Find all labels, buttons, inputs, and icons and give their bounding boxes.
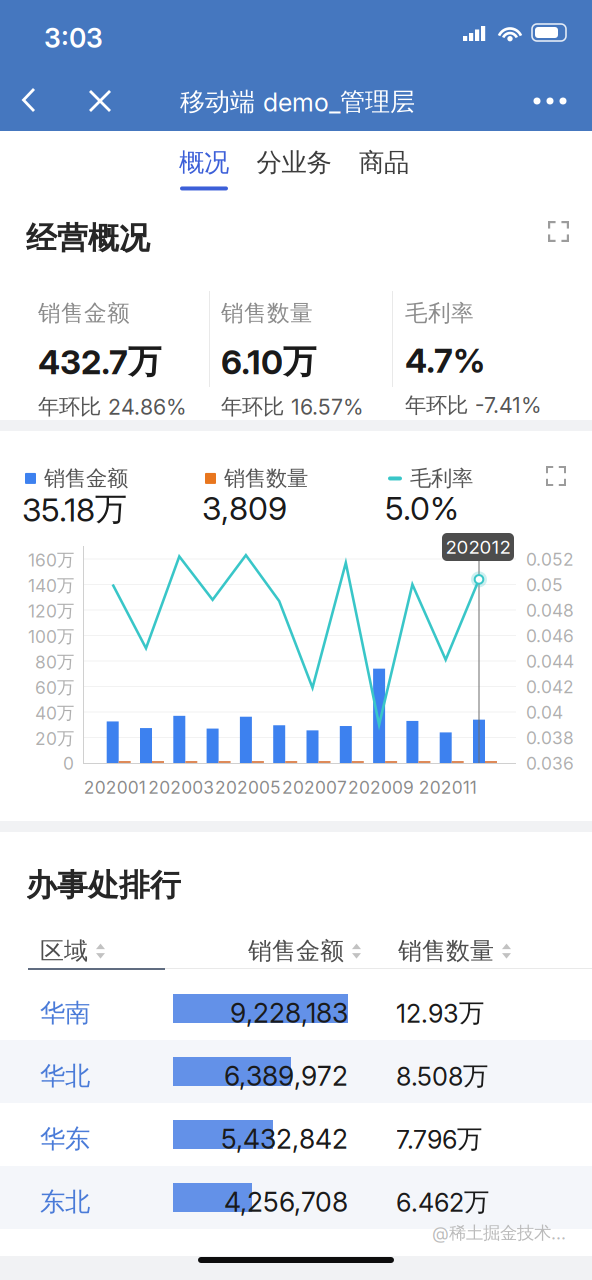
staticText: 12.93万: [396, 997, 484, 1029]
staticText: 9,228,183: [230, 997, 348, 1029]
staticText: 202009: [348, 777, 414, 798]
staticText: 5.0%: [385, 489, 459, 528]
staticText: 202012: [445, 536, 510, 558]
staticText: 80万: [35, 651, 74, 673]
button[interactable]: 分业务: [248, 131, 340, 191]
button[interactable]: 东北: [0, 1166, 592, 1229]
staticText: 8.508万: [396, 1060, 488, 1092]
button[interactable]: Expand overview: [548, 221, 569, 242]
staticText: 0.046: [526, 625, 574, 646]
button[interactable]: Close: [85, 86, 115, 116]
staticText: 0.052: [526, 549, 574, 570]
staticText: 毛利率: [410, 465, 473, 492]
staticText: 0.05: [526, 574, 563, 595]
staticText: 6,389,972: [224, 1060, 348, 1092]
staticText: 东北: [40, 1186, 90, 1218]
staticText: 4.7%: [405, 341, 485, 381]
staticText: 年环比: [221, 393, 284, 420]
staticText: 经营概况: [26, 219, 150, 258]
button[interactable]: Expand chart: [546, 466, 566, 486]
staticText: 0.042: [526, 676, 574, 697]
staticText: 销售金额: [44, 465, 128, 492]
staticText: 3:03: [44, 22, 103, 54]
staticText: 0.038: [526, 727, 574, 748]
staticText: 3,809: [202, 489, 287, 528]
staticText: 概况: [179, 146, 229, 178]
staticText: 销售数量: [224, 465, 308, 492]
staticText: 432.7万: [38, 341, 161, 383]
staticText: 销售数量: [221, 299, 313, 328]
staticText: 20万: [35, 727, 74, 749]
staticText: 移动端 demo_管理层: [180, 86, 415, 118]
staticText: 销售金额: [38, 299, 130, 328]
staticText: 华东: [40, 1123, 90, 1155]
button[interactable]: 华北: [0, 1040, 592, 1103]
staticText: 140万: [28, 574, 74, 596]
staticText: 4,256,708: [224, 1186, 348, 1218]
staticText: 202005: [215, 777, 281, 798]
staticText: 分业务: [256, 146, 331, 178]
button[interactable]: Back: [12, 83, 46, 117]
staticText: 华北: [40, 1060, 90, 1092]
staticText: 16.57%: [291, 394, 364, 420]
staticText: 24.86%: [108, 394, 187, 420]
staticText: 6.10万: [221, 341, 316, 383]
staticText: 销售数量: [398, 936, 494, 966]
staticText: 0.048: [526, 600, 574, 621]
staticText: 7.796万: [396, 1123, 482, 1155]
staticText: @稀土掘金技术社区: [432, 1222, 582, 1244]
button[interactable]: More options: [527, 88, 573, 114]
staticText: 35.18万: [22, 489, 127, 529]
staticText: 0.04: [526, 702, 563, 723]
staticText: 办事处排行: [26, 866, 181, 905]
staticText: 0: [63, 753, 74, 774]
staticText: 202007: [282, 777, 347, 798]
staticText: -7.41%: [475, 392, 542, 418]
staticText: 华南: [40, 997, 90, 1029]
staticText: 0.036: [526, 753, 574, 774]
button[interactable]: 商品: [340, 131, 428, 191]
staticText: 年环比: [38, 393, 101, 420]
button[interactable]: 华东: [0, 1103, 592, 1166]
staticText: 销售金额: [248, 936, 344, 966]
staticText: 年环比: [405, 392, 468, 419]
staticText: 6.462万: [396, 1186, 489, 1218]
staticText: 202011: [419, 777, 477, 798]
staticText: 40万: [35, 702, 74, 724]
staticText: 0.044: [526, 651, 574, 672]
staticText: 202003: [148, 777, 214, 798]
staticText: 商品: [359, 146, 409, 178]
staticText: 202001: [84, 777, 146, 798]
staticText: 120万: [28, 600, 74, 622]
staticText: 100万: [28, 625, 74, 647]
staticText: 160万: [28, 549, 74, 571]
staticText: 区域: [40, 936, 88, 966]
staticText: 5,432,842: [221, 1123, 348, 1155]
button[interactable]: 概况: [160, 131, 248, 191]
staticText: 毛利率: [405, 299, 474, 328]
button[interactable]: 华南: [0, 977, 592, 1040]
staticText: 60万: [35, 676, 74, 698]
